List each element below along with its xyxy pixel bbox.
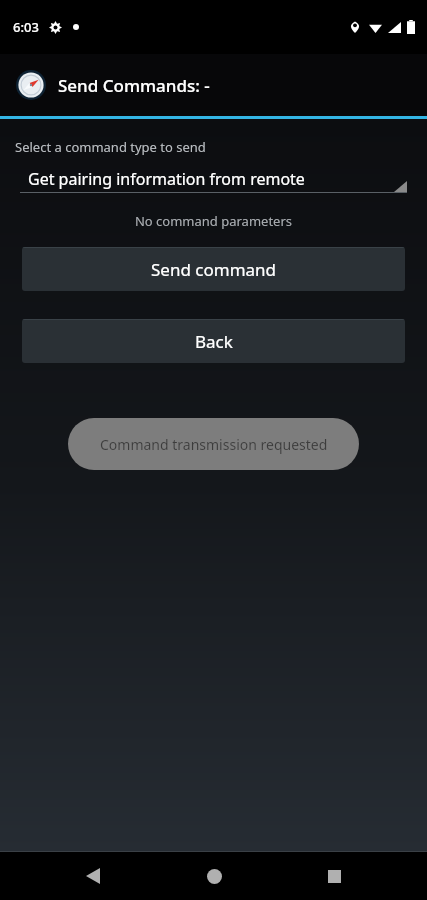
button[interactable]: Get pairing information from remote — [20, 165, 407, 193]
button[interactable]: Recent apps — [306, 852, 362, 900]
button[interactable]: Home — [186, 852, 242, 900]
button[interactable]: Back — [65, 852, 121, 900]
staticText: Send Commands: - — [58, 74, 210, 97]
button[interactable]: Back — [22, 319, 405, 363]
staticText: Select a command type to send — [15, 138, 206, 156]
staticText: No command parameters — [0, 212, 427, 230]
button[interactable]: Send command — [22, 247, 405, 291]
staticText: Get pairing information from remote — [28, 168, 305, 190]
staticText: Command transmission requested — [100, 435, 328, 454]
staticText: 6:03 — [13, 18, 39, 36]
staticText: Send command — [151, 258, 277, 281]
staticText: Back — [195, 330, 233, 353]
